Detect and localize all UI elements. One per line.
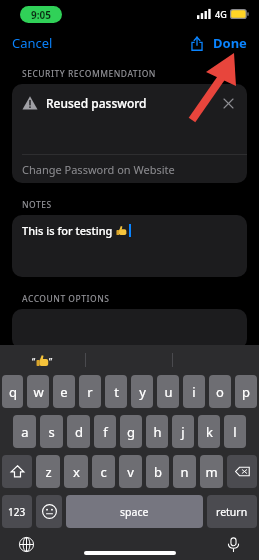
- staticText: return: [216, 505, 248, 519]
- button[interactable]: s: [40, 415, 63, 448]
- button[interactable]: j: [172, 415, 194, 448]
- staticText: 123: [8, 505, 26, 519]
- button[interactable]: Emoji: [36, 495, 62, 528]
- staticText: y: [139, 383, 146, 401]
- button[interactable]: return: [207, 495, 257, 528]
- button[interactable]: Dictate: [221, 532, 245, 556]
- button[interactable]: v: [119, 455, 142, 488]
- staticText: h: [153, 423, 162, 441]
- button[interactable]: y: [131, 375, 153, 408]
- button[interactable]: Delete: [227, 455, 257, 488]
- staticText: k: [206, 423, 213, 441]
- button[interactable]: space: [66, 495, 203, 528]
- staticText: l: [233, 423, 237, 441]
- button[interactable]: Change keyboard: [14, 532, 38, 556]
- button[interactable]: n: [173, 455, 196, 488]
- button[interactable]: f: [94, 415, 116, 448]
- button[interactable]: “: [0, 345, 85, 375]
- staticText: Done: [213, 34, 247, 52]
- staticText: This is for testing: [22, 223, 116, 238]
- button[interactable]: This is for testing: [12, 215, 247, 277]
- staticText: z: [45, 463, 52, 481]
- button[interactable]: e: [53, 375, 75, 408]
- staticText: v: [127, 463, 134, 481]
- staticText: d: [75, 423, 83, 441]
- staticText: space: [120, 505, 149, 519]
- staticText: Cancel: [12, 34, 53, 52]
- button[interactable]: u: [157, 375, 179, 408]
- button[interactable]: Reused password: [12, 84, 247, 122]
- staticText: u: [164, 383, 173, 401]
- button[interactable]: c: [92, 455, 115, 488]
- staticText: w: [33, 383, 44, 401]
- staticText: p: [242, 383, 250, 401]
- button[interactable]: Share: [185, 32, 209, 55]
- button[interactable]: a: [13, 415, 36, 448]
- staticText: x: [73, 463, 80, 481]
- staticText: r: [87, 383, 93, 401]
- button[interactable]: w: [27, 375, 49, 408]
- staticText: t: [114, 383, 119, 401]
- button[interactable]: Dismiss: [219, 94, 237, 112]
- button[interactable]: m: [200, 455, 223, 488]
- staticText: ”: [49, 355, 53, 367]
- button[interactable]: 123: [2, 495, 32, 528]
- staticText: o: [216, 383, 224, 401]
- staticText: Change Password on Website: [22, 162, 175, 177]
- button[interactable]: k: [198, 415, 220, 448]
- staticText: q: [9, 383, 17, 401]
- button[interactable]: g: [120, 415, 142, 448]
- button[interactable]: Done: [209, 29, 259, 57]
- staticText: m: [205, 463, 218, 481]
- button[interactable]: Change Password on Website: [12, 155, 247, 183]
- button[interactable]: o: [209, 375, 231, 408]
- staticText: SECURITY RECOMMENDATION: [22, 68, 156, 80]
- staticText: 9:05: [31, 8, 51, 22]
- button[interactable]: Cancel: [0, 29, 65, 57]
- staticText: 4G: [215, 8, 227, 20]
- staticText: g: [127, 423, 135, 441]
- button[interactable]: h: [146, 415, 168, 448]
- staticText: i: [192, 383, 196, 401]
- button[interactable]: x: [64, 455, 88, 488]
- button[interactable]: d: [67, 415, 90, 448]
- staticText: ACCOUNT OPTIONS: [22, 293, 110, 305]
- staticText: c: [100, 463, 107, 481]
- staticText: j: [181, 423, 185, 441]
- staticText: f: [103, 423, 108, 441]
- staticText: s: [48, 423, 55, 441]
- button[interactable]: r: [79, 375, 101, 408]
- staticText: a: [21, 423, 29, 441]
- staticText: b: [154, 463, 162, 481]
- button[interactable]: l: [224, 415, 246, 448]
- button[interactable]: q: [2, 375, 23, 408]
- button[interactable]: i: [183, 375, 205, 408]
- staticText: “: [32, 355, 36, 367]
- button[interactable]: b: [146, 455, 169, 488]
- staticText: NOTES: [22, 199, 52, 211]
- button[interactable]: t: [105, 375, 127, 408]
- button[interactable]: p: [235, 375, 257, 408]
- staticText: e: [60, 383, 68, 401]
- staticText: Reused password: [46, 95, 147, 111]
- button[interactable]: z: [36, 455, 60, 488]
- button[interactable]: Shift: [2, 455, 32, 488]
- staticText: n: [180, 463, 189, 481]
